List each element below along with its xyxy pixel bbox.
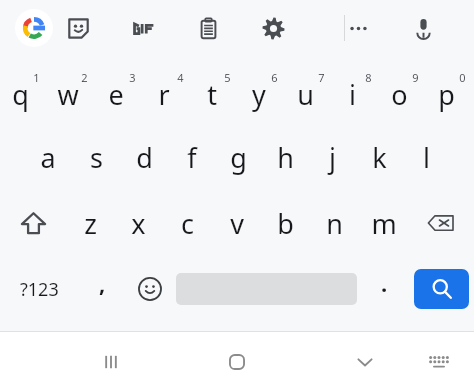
button[interactable]: , [78,256,126,322]
staticText: 4 [177,70,184,85]
staticText: r [158,76,170,113]
button[interactable]: i [333,58,380,124]
staticText: 3 [129,70,136,85]
button[interactable]: Emoji [126,256,173,322]
button[interactable]: b [261,190,310,256]
button[interactable]: f [168,124,215,190]
staticText: 5 [224,70,231,85]
button[interactable]: Home [212,346,262,378]
button[interactable]: Backspace [408,190,474,256]
button[interactable]: g [215,124,262,190]
button[interactable]: z [66,190,114,256]
button[interactable]: Back, hide keyboard [340,346,390,378]
staticText: v [230,205,244,242]
button[interactable]: w [48,58,96,124]
staticText: 2 [81,70,88,85]
staticText: x [131,205,146,242]
button[interactable]: v [212,190,261,256]
button[interactable]: u [286,58,333,124]
staticText: f [187,139,197,176]
staticText: t [207,76,217,113]
staticText: b [277,205,294,242]
staticText: 0 [459,70,466,85]
button[interactable]: Recent apps [86,346,136,378]
staticText: g [230,139,247,176]
staticText: p [438,76,455,113]
staticText: n [326,205,343,242]
button[interactable]: Google search [15,9,53,47]
staticText: l [423,139,430,176]
button[interactable]: d [120,124,168,190]
staticText: u [297,76,314,113]
staticText: d [136,139,153,176]
staticText: k [372,139,387,176]
button[interactable]: m [359,190,408,256]
staticText: a [40,139,56,176]
button[interactable]: Settings [255,10,291,46]
button[interactable]: c [163,190,212,256]
button[interactable]: p [427,58,474,124]
staticText: , [99,268,106,298]
button[interactable]: h [262,124,309,190]
button[interactable]: s [72,124,120,190]
button[interactable]: Clipboard [190,10,226,46]
staticText: . [381,268,388,298]
button[interactable]: GIF [125,10,161,46]
staticText: i [349,76,356,113]
staticText: 9 [412,70,419,85]
button[interactable]: e [96,58,144,124]
staticText: 8 [365,70,372,85]
staticText: q [12,76,29,113]
staticText: s [90,139,103,176]
button[interactable]: j [309,124,356,190]
staticText: 1 [33,70,40,85]
button[interactable]: Search [414,269,469,309]
staticText: w [57,76,79,113]
staticText: e [108,76,124,113]
staticText: j [329,139,336,176]
button[interactable]: o [380,58,427,124]
button[interactable]: Stickers [60,10,96,46]
button[interactable]: ?123 [0,256,78,322]
staticText: c [181,205,194,242]
button[interactable]: l [403,124,450,190]
button[interactable]: q [0,58,48,124]
staticText: 6 [271,70,278,85]
button[interactable]: More options [340,10,376,46]
button[interactable]: t [192,58,239,124]
button[interactable]: Voice input [405,10,441,46]
staticText: 7 [318,70,325,85]
button[interactable]: Space [173,256,360,322]
button[interactable]: y [239,58,286,124]
staticText: m [371,205,397,242]
staticText: y [252,76,266,113]
button[interactable]: Shift [0,190,66,256]
button[interactable]: n [310,190,359,256]
staticText: o [391,76,408,113]
button[interactable]: Switch keyboard [420,348,458,376]
staticText: h [277,139,294,176]
staticText: z [84,205,97,242]
button[interactable]: . [360,256,408,322]
button[interactable]: k [356,124,403,190]
button[interactable]: x [114,190,163,256]
button[interactable]: a [24,124,72,190]
staticText: ?123 [20,277,59,302]
button[interactable]: r [144,58,192,124]
